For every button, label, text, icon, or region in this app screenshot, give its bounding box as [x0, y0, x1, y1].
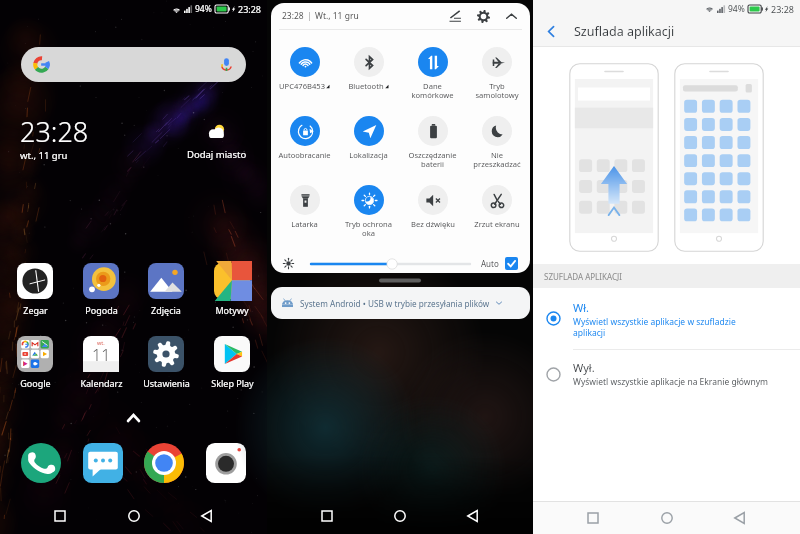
button[interactable]: Collapse	[504, 9, 519, 24]
button[interactable]: Wył.	[533, 350, 800, 398]
button[interactable]: Tryb ochrona oka	[338, 185, 399, 239]
button[interactable]: Auto brightness	[505, 257, 518, 270]
button[interactable]: System Android • USB w trybie przesyłani…	[271, 287, 530, 319]
button[interactable]: Dodaj miasto	[180, 123, 253, 161]
button[interactable]: Recent apps	[47, 503, 73, 529]
staticText: Tryb samolotowy	[475, 81, 519, 101]
staticText: Zdjęcia	[151, 304, 181, 316]
button[interactable]: Recent apps	[580, 505, 606, 531]
staticText: System Android • USB w trybie przesyłani…	[300, 298, 490, 309]
button[interactable]: Phone	[21, 443, 61, 483]
staticText: wt.	[97, 339, 105, 346]
button[interactable]: wt.	[70, 336, 132, 389]
button[interactable]: Sklep Play	[201, 336, 263, 389]
staticText: Pogoda	[85, 304, 118, 316]
staticText: Zegar	[23, 304, 48, 316]
button[interactable]: Back	[194, 503, 220, 529]
staticText: Wyświetl wszystkie aplikacje na Ekranie …	[573, 376, 769, 388]
staticText: Auto	[481, 258, 499, 269]
button[interactable]: Dane komórkowe	[402, 47, 463, 101]
button[interactable]: Back	[727, 505, 753, 531]
staticText: Wt., 11 gru	[315, 10, 359, 22]
staticText: 23:28	[238, 3, 262, 15]
button[interactable]: Zrzut ekranu	[466, 185, 527, 229]
button[interactable]: Google	[4, 336, 66, 389]
staticText: 11	[92, 344, 111, 366]
button[interactable]: Wł.	[533, 288, 800, 349]
staticText: Bez dźwięku	[411, 219, 455, 229]
button[interactable]: Nie przeszkadzać	[466, 116, 527, 170]
button[interactable]: Latarka	[274, 185, 335, 229]
staticText: Wyświetl wszystkie aplikacje w szufladzi…	[573, 316, 736, 338]
button[interactable]: Pogoda	[70, 263, 132, 316]
button[interactable]: Settings	[476, 9, 491, 24]
staticText: Ustawienia	[143, 377, 190, 389]
button[interactable]: Motywy	[201, 263, 263, 316]
staticText: Latarka	[291, 219, 318, 229]
staticText: Google	[20, 377, 51, 389]
button[interactable]: Chrome	[144, 443, 184, 483]
staticText: UPC476B453	[279, 81, 325, 91]
staticText: 94%	[728, 3, 745, 15]
button[interactable]	[21, 47, 246, 82]
button[interactable]	[311, 257, 470, 271]
staticText: Dodaj miasto	[187, 148, 247, 161]
button[interactable]: Home	[654, 505, 680, 531]
button[interactable]: Recent apps	[314, 503, 340, 529]
button[interactable]: Oszczędzanie baterii	[402, 116, 463, 170]
button[interactable]: Autoobracanie	[274, 116, 335, 160]
staticText: 23:28	[20, 113, 89, 150]
button[interactable]: Ustawienia	[135, 336, 197, 389]
button[interactable]: Back	[533, 17, 570, 46]
button[interactable]: Bez dźwięku	[402, 185, 463, 229]
button[interactable]: Tryb samolotowy	[466, 47, 527, 101]
staticText: Sklep Play	[211, 377, 254, 389]
staticText: Zrzut ekranu	[474, 219, 520, 229]
button[interactable]: UPC476B453	[274, 47, 335, 91]
staticText: 23:28	[771, 3, 795, 15]
staticText: Dane komórkowe	[411, 81, 454, 101]
staticText: Bluetooth	[348, 81, 384, 91]
staticText: wt., 11 gru	[20, 149, 68, 162]
staticText: 23:28	[282, 10, 304, 22]
button[interactable]: Messages	[83, 443, 123, 483]
staticText: Wył.	[573, 360, 595, 375]
staticText: Lokalizacja	[349, 150, 388, 160]
button[interactable]: Zegar	[4, 263, 66, 316]
button[interactable]: Home	[387, 503, 413, 529]
staticText: Tryb ochrona oka	[345, 219, 392, 239]
staticText: Nie przeszkadzać	[473, 150, 521, 170]
staticText: Wł.	[573, 300, 590, 315]
staticText: Oszczędzanie baterii	[408, 150, 457, 170]
button[interactable]: Back	[460, 503, 486, 529]
button[interactable]: Zdjęcia	[135, 263, 197, 316]
button[interactable]: Edit tiles	[448, 9, 463, 24]
button[interactable]: Home	[121, 503, 147, 529]
staticText: 94%	[195, 3, 212, 15]
button[interactable]: Bluetooth	[338, 47, 399, 91]
staticText: Szuflada aplikacji	[574, 23, 675, 40]
staticText: SZUFLADA APLIKACJI	[544, 271, 622, 282]
button[interactable]: Camera	[206, 443, 246, 483]
staticText: Autoobracanie	[278, 150, 331, 160]
staticText: Kalendarz	[80, 377, 123, 389]
button[interactable]: Lokalizacja	[338, 116, 399, 160]
staticText: Motywy	[215, 304, 249, 316]
